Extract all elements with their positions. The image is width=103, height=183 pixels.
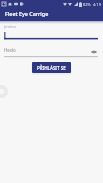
staticText: 82% bbox=[83, 2, 91, 7]
button[interactable]: Heslo bbox=[4, 44, 86, 58]
staticText: Jméno bbox=[4, 24, 16, 29]
staticText: Fleet Eye Carrige bbox=[5, 10, 49, 17]
staticText: 4:19 bbox=[93, 2, 101, 7]
staticText: PŘIHLÁSIT SE bbox=[37, 65, 66, 71]
button[interactable]: PŘIHLÁSIT SE bbox=[32, 62, 71, 73]
staticText: Heslo bbox=[4, 47, 16, 53]
button[interactable]: Jméno bbox=[4, 22, 98, 40]
button[interactable]: Show password bbox=[88, 46, 99, 57]
